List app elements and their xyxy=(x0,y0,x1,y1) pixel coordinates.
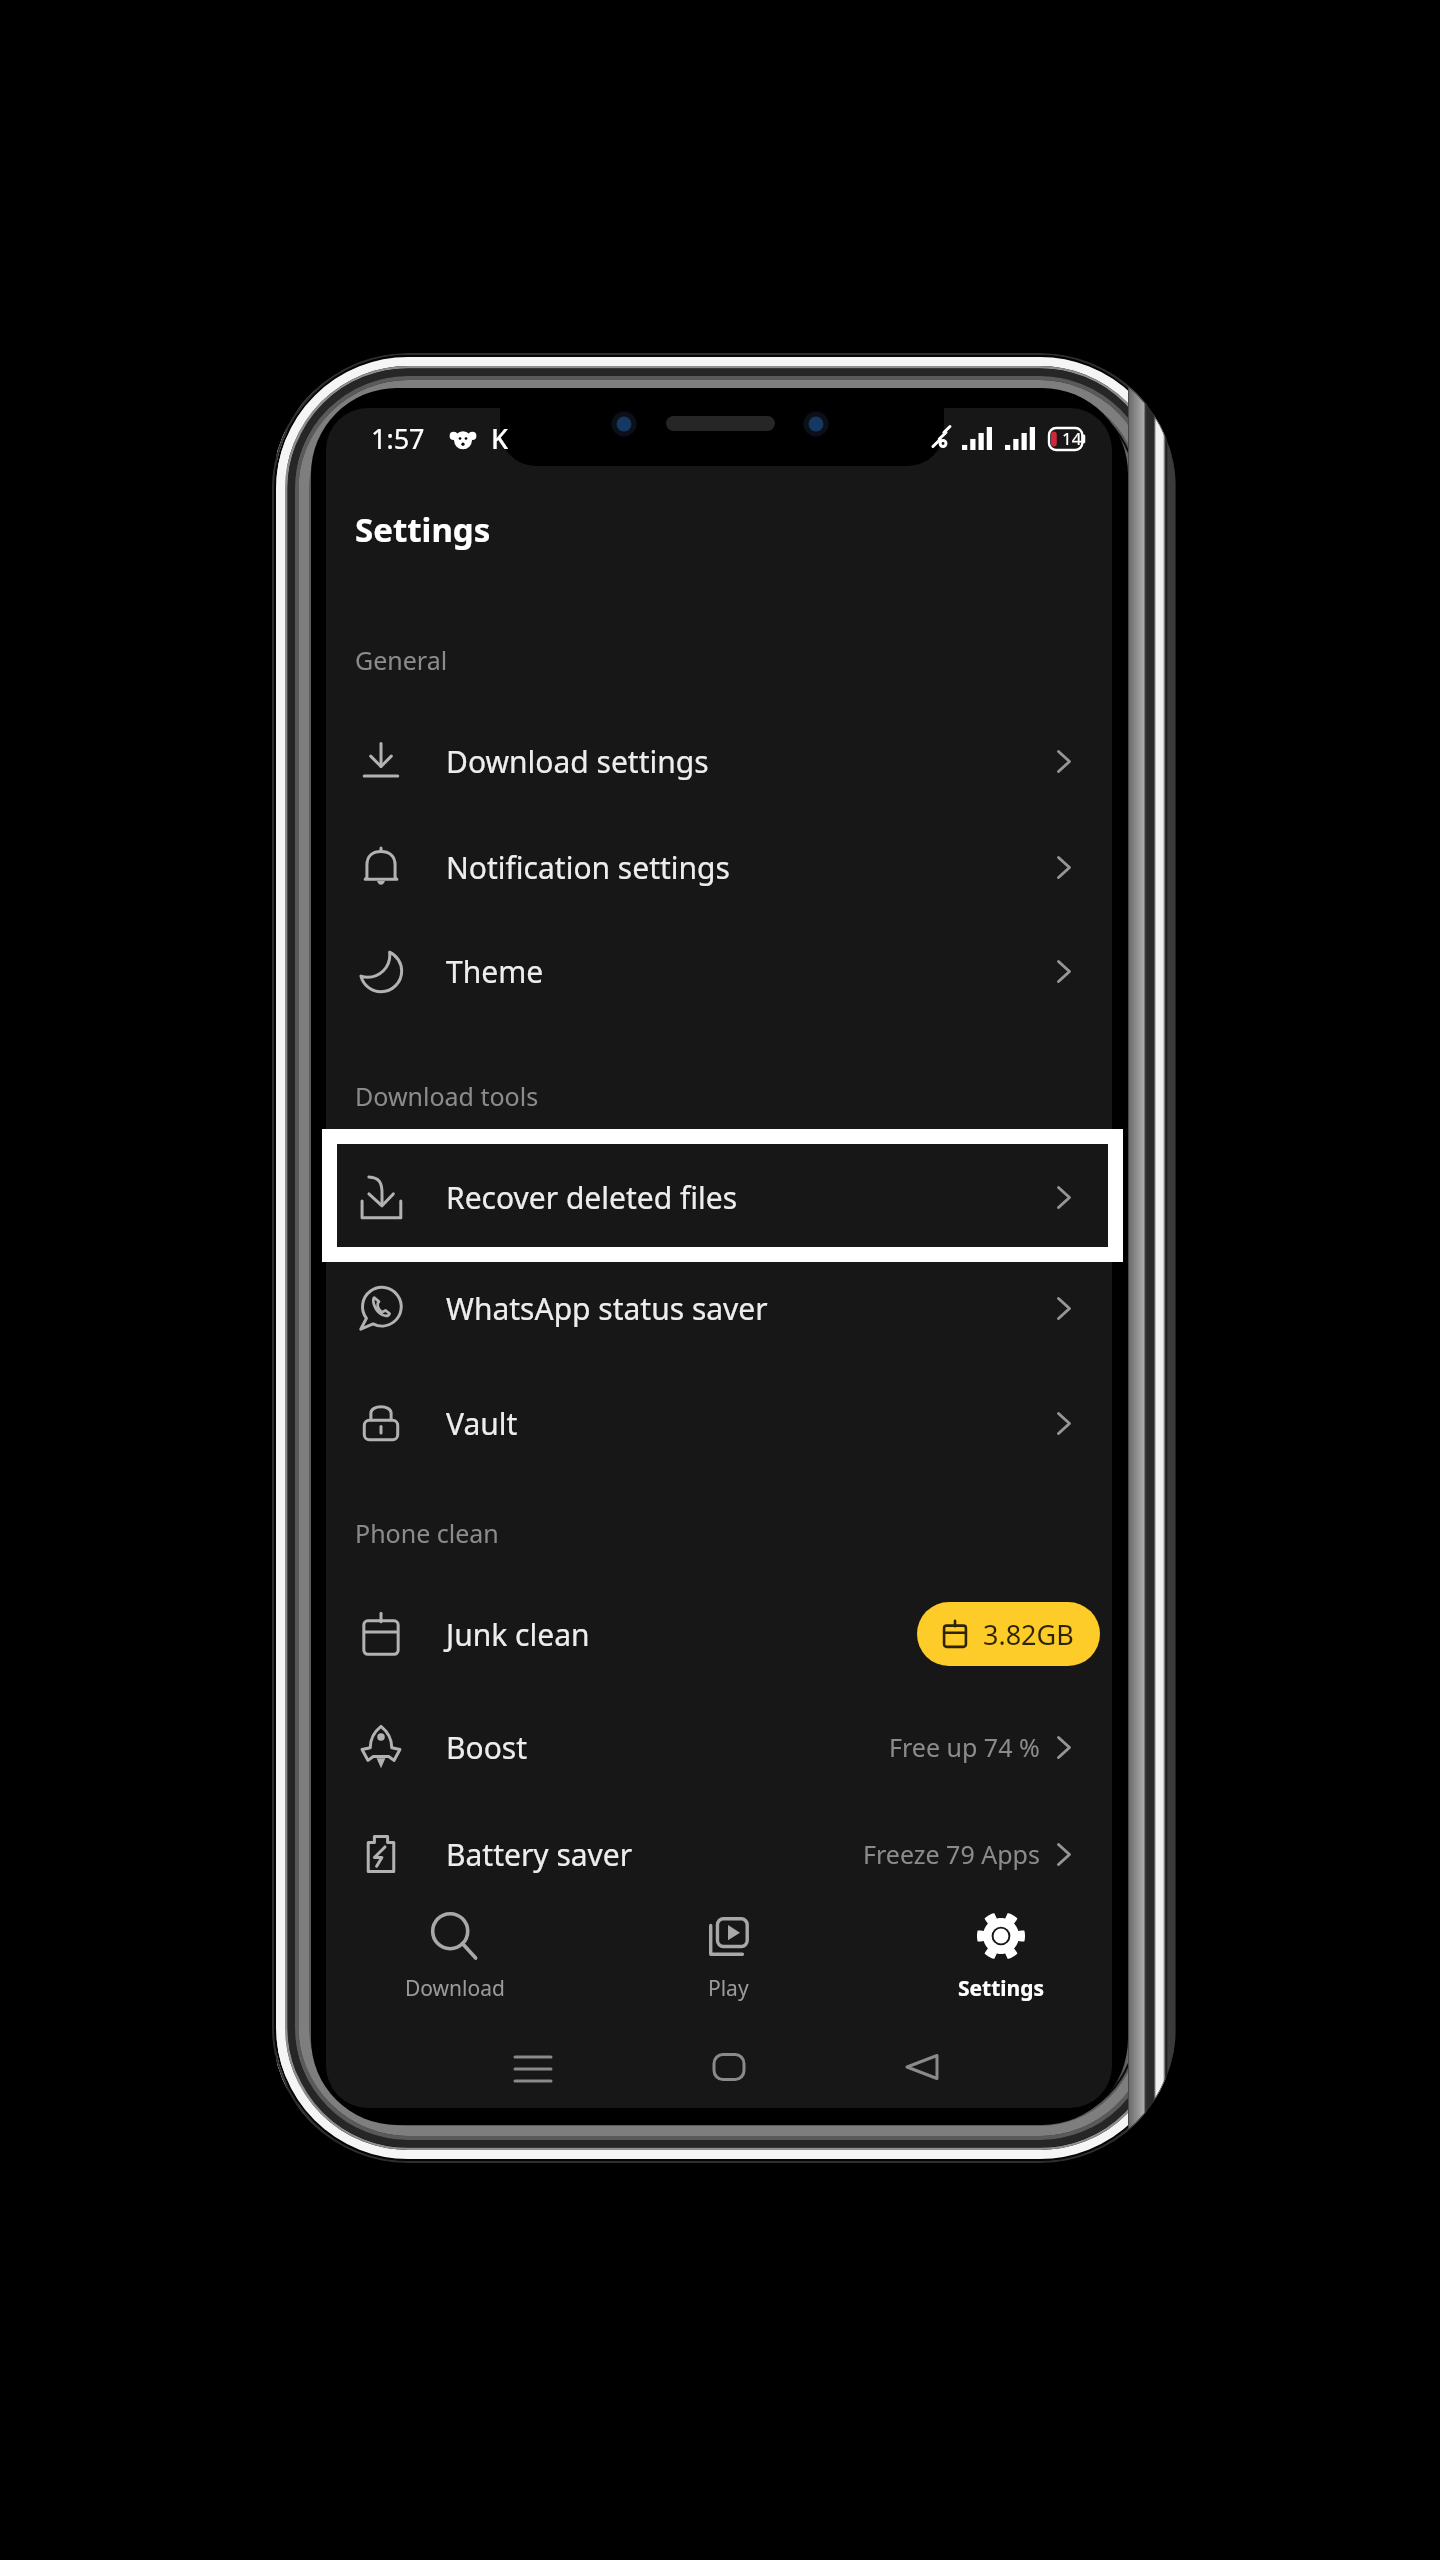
button[interactable]: Boost xyxy=(326,1695,1112,1799)
button[interactable]: Back xyxy=(868,2028,978,2106)
button[interactable]: Vault xyxy=(326,1371,1112,1475)
button[interactable]: Theme xyxy=(326,919,1112,1023)
button[interactable]: Recover deleted files xyxy=(326,1145,1112,1249)
button[interactable]: Download xyxy=(326,1888,586,2018)
button[interactable]: WhatsApp status saver xyxy=(326,1256,1112,1360)
staticText: General xyxy=(355,643,448,677)
staticText: Freeze 79 Apps xyxy=(863,1837,1040,1871)
staticText: K xyxy=(491,420,509,457)
staticText: 1:57 xyxy=(371,420,425,457)
button[interactable]: Download settings xyxy=(326,709,1112,813)
staticText: Phone clean xyxy=(355,1516,499,1550)
button[interactable]: Junk clean xyxy=(326,1582,1112,1686)
staticText: Play xyxy=(708,1974,749,2003)
staticText: WhatsApp status saver xyxy=(446,1288,768,1329)
staticText: Settings xyxy=(958,1974,1045,2003)
staticText: Theme xyxy=(446,951,544,992)
staticText: Notification settings xyxy=(446,847,730,888)
button[interactable]: Recent apps xyxy=(478,2028,588,2106)
staticText: 14 xyxy=(1062,427,1082,450)
button[interactable]: Settings xyxy=(870,1888,1112,2018)
staticText: Vault xyxy=(446,1403,518,1444)
button[interactable]: Play xyxy=(597,1888,859,2018)
staticText: Junk clean xyxy=(446,1614,590,1655)
staticText: Battery saver xyxy=(446,1834,633,1875)
staticText: Download tools xyxy=(355,1079,539,1113)
staticText: Download xyxy=(405,1974,505,2003)
staticText: 3.82GB xyxy=(983,1616,1074,1653)
staticText: Settings xyxy=(355,507,491,552)
staticText: Free up 74 % xyxy=(889,1730,1040,1764)
button[interactable]: Home xyxy=(674,2028,784,2106)
staticText: Recover deleted files xyxy=(446,1177,737,1218)
staticText: Boost xyxy=(446,1727,527,1768)
button[interactable]: Battery saver xyxy=(326,1802,1112,1906)
staticText: Download settings xyxy=(446,741,709,782)
button[interactable]: Notification settings xyxy=(326,815,1112,919)
